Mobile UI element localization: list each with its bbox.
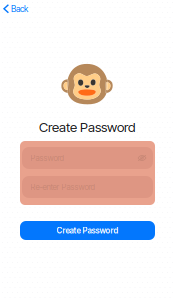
staticText: Create Password [39,119,135,135]
button[interactable]: Show password [136,153,148,163]
staticText: 🐵 [58,57,116,110]
button[interactable]: Create Password [20,221,155,240]
staticText: Create Password [56,226,118,235]
staticText: Back [11,3,28,14]
button[interactable]: Back [0,0,34,18]
staticText: Re-enter Password [30,182,94,192]
staticText: Password [30,153,63,163]
